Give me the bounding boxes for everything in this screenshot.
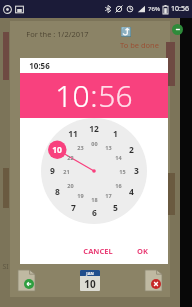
staticText: 3 (134, 165, 139, 177)
staticText: 13 (105, 144, 112, 151)
staticText: 2 (129, 144, 134, 156)
staticText: 4 (129, 186, 134, 198)
staticText: 16 (115, 182, 122, 189)
staticText: 00 (91, 140, 98, 147)
staticText: 21 (63, 168, 70, 175)
staticText: ⤴ (120, 27, 132, 38)
staticText: 6 (92, 207, 97, 219)
staticText: To be done (120, 40, 159, 50)
staticText: 9 (50, 165, 55, 177)
staticText: 10 (55, 75, 90, 116)
button[interactable]: Undo (18, 270, 35, 291)
staticText: 22 (67, 154, 74, 161)
staticText: OK (137, 246, 148, 256)
staticText: 11 (68, 128, 78, 140)
staticText: 76% (148, 5, 160, 13)
staticText: SI (2, 262, 9, 272)
staticText: JAN (86, 271, 94, 276)
button[interactable]: CANCEL (77, 242, 119, 260)
staticText: 14 (115, 154, 122, 161)
staticText: 7 (71, 202, 76, 214)
staticText: 1 (113, 128, 118, 140)
staticText: 56 (98, 75, 133, 116)
staticText: For the : 1/2/2017 (26, 29, 89, 39)
staticText: 23 (77, 144, 84, 151)
staticText: 15 (119, 168, 126, 175)
staticText: 12 (89, 123, 99, 135)
staticText: 18 (91, 196, 98, 203)
button[interactable]: OK (131, 242, 154, 260)
staticText: 10 (84, 277, 96, 291)
button[interactable]: Pick date (80, 270, 100, 291)
staticText: 5 (113, 202, 118, 214)
staticText: : (90, 75, 98, 116)
button[interactable]: 10 (55, 75, 90, 116)
staticText: 17 (105, 192, 112, 199)
staticText: 10:56 (171, 4, 189, 14)
staticText: 19 (77, 192, 84, 199)
staticText: 20 (67, 182, 74, 189)
staticText: 10 (52, 144, 62, 156)
staticText: CANCEL (83, 246, 113, 256)
button[interactable] (41, 118, 147, 224)
staticText: 10:56 (29, 60, 50, 71)
button[interactable]: 56 (98, 75, 133, 116)
button[interactable]: Delete (145, 270, 162, 291)
staticText: 8 (55, 186, 60, 198)
